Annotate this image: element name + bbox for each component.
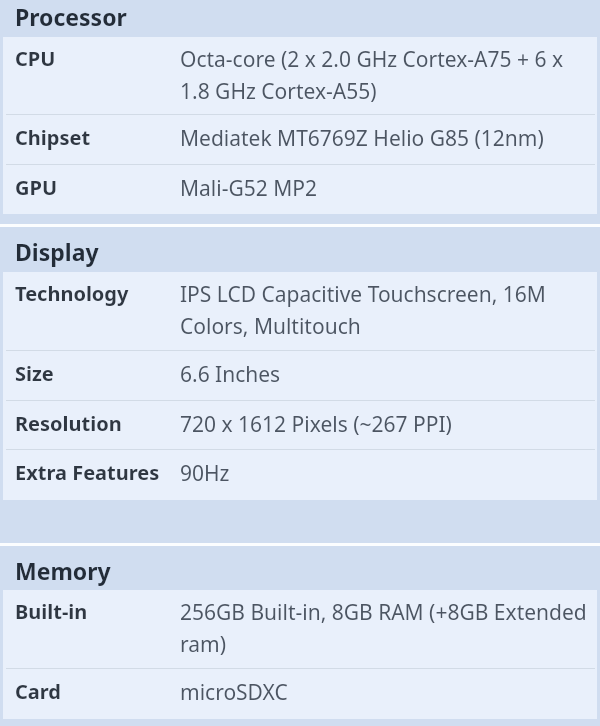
staticText: 90Hz — [180, 459, 230, 488]
button[interactable]: GPU — [3, 165, 597, 214]
staticText: Chipset — [15, 124, 180, 151]
button[interactable]: Extra Features — [3, 450, 597, 500]
button[interactable]: Chipset — [3, 115, 597, 165]
staticText: Built-in — [15, 598, 180, 625]
staticText: 6.6 Inches — [180, 360, 281, 389]
staticText: Processor — [15, 1, 127, 32]
button[interactable]: Technology — [3, 272, 597, 351]
staticText: Card — [15, 678, 180, 705]
staticText: Resolution — [15, 410, 180, 437]
button[interactable]: Built-in — [3, 590, 597, 669]
staticText: Octa-core (2 x 2.0 GHz Cortex-A75 + 6 x … — [180, 45, 589, 105]
staticText: 720 x 1612 Pixels (~267 PPI) — [180, 410, 452, 439]
button[interactable]: Size — [3, 351, 597, 401]
staticText: Memory — [15, 555, 111, 586]
staticText: Display — [15, 236, 99, 267]
button[interactable]: Processor — [0, 0, 600, 37]
button[interactable]: Resolution — [3, 401, 597, 450]
button[interactable]: CPU — [3, 37, 597, 115]
staticText: Size — [15, 360, 180, 387]
staticText: Mediatek MT6769Z Helio G85 (12nm) — [180, 124, 544, 153]
staticText: 256GB Built-in, 8GB RAM (+8GB Extended r… — [180, 598, 589, 658]
button[interactable]: Memory — [0, 546, 600, 590]
staticText: Technology — [15, 280, 180, 307]
staticText: CPU — [15, 45, 180, 72]
staticText: Mali-G52 MP2 — [180, 174, 317, 203]
staticText: Extra Features — [15, 459, 180, 486]
button[interactable]: Display — [0, 227, 600, 272]
button[interactable]: Card — [3, 669, 597, 719]
staticText: IPS LCD Capacitive Touchscreen, 16M Colo… — [180, 280, 589, 340]
staticText: GPU — [15, 174, 180, 201]
staticText: microSDXC — [180, 678, 288, 707]
